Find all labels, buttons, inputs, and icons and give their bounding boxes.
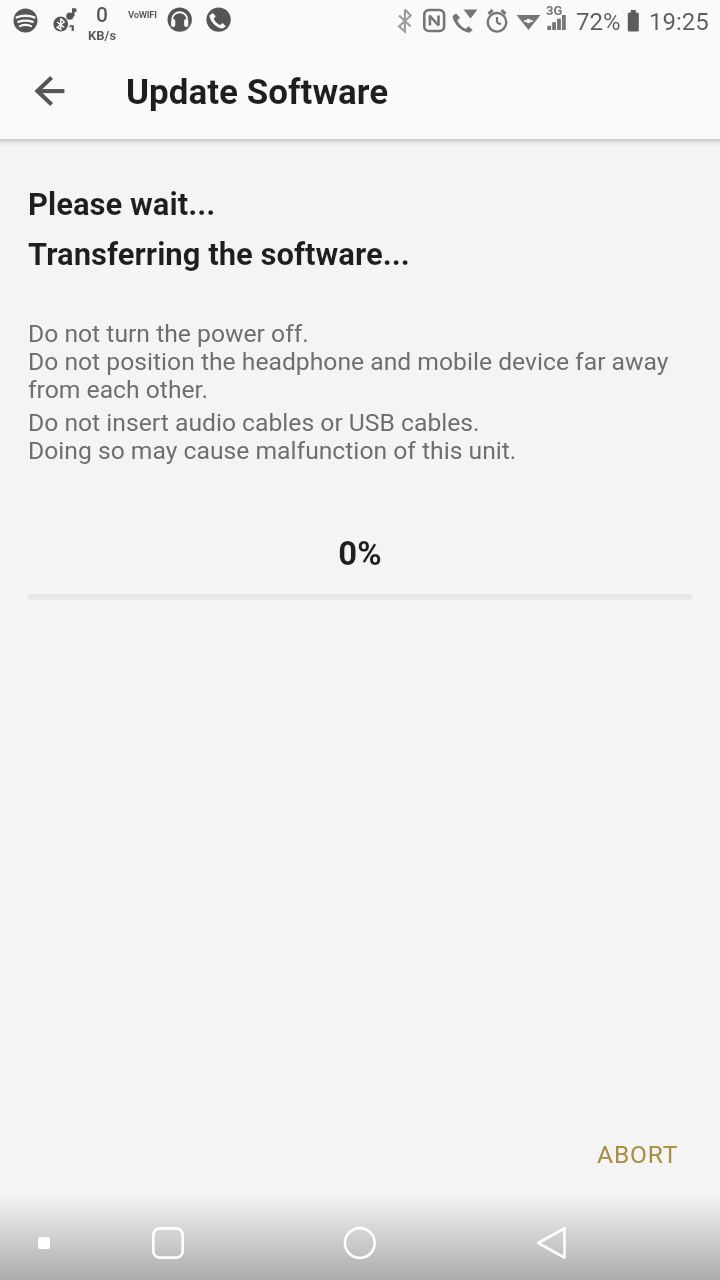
staticText: 0 [96,3,108,28]
staticText: 3G [546,3,563,18]
staticText: Transferring the software... [28,236,410,272]
button[interactable]: ABORT [575,1120,700,1188]
staticText: ABORT [597,1140,679,1169]
staticText: Update Software [126,72,389,113]
button[interactable]: Back [505,1192,595,1280]
button[interactable]: Menu [0,1192,90,1280]
staticText: Do not turn the power off. Do not positi… [28,319,669,404]
button[interactable]: Home [315,1192,405,1280]
button[interactable]: Back [0,45,99,139]
staticText: 0% [0,534,720,573]
staticText: Do not insert audio cables or USB cables… [28,408,517,465]
button[interactable]: Recents [122,1192,212,1280]
staticText: VoWIFI [128,9,157,20]
staticText: Please wait... [28,186,216,222]
staticText: 19:25 [649,8,709,36]
staticText: 72% [576,8,621,36]
staticText: KB/s [88,28,117,43]
